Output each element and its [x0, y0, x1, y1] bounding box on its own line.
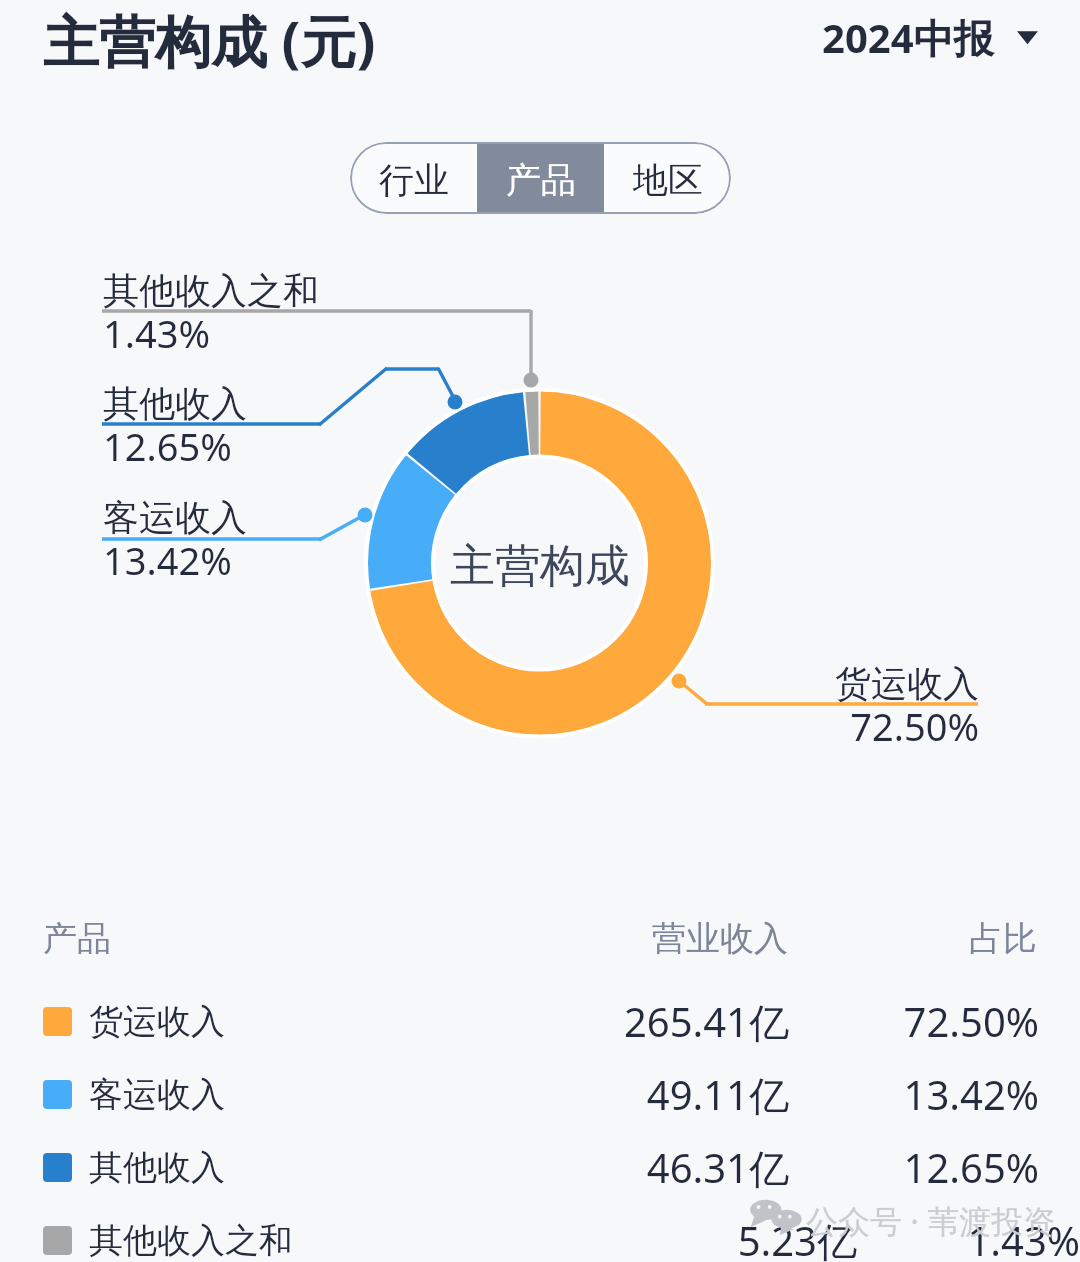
button[interactable]: 客运收入 — [0, 1061, 1080, 1127]
staticText: 49.11亿 — [500, 1067, 789, 1133]
staticText: 行业 — [379, 158, 449, 202]
button[interactable]: 其他收入 — [0, 1134, 1080, 1200]
staticText: 1.43% — [868, 1213, 1080, 1262]
staticText: 产品 — [43, 917, 111, 960]
staticText: 地区 — [633, 158, 703, 202]
staticText: 其他收入之和 — [89, 1219, 293, 1262]
staticText: 客运收入 — [89, 1073, 225, 1116]
button[interactable]: 行业 — [350, 142, 477, 214]
staticText: 13.42% — [800, 1067, 1039, 1133]
staticText: 13.42% — [103, 534, 232, 586]
staticText: 主营构成 — [450, 538, 630, 595]
staticText: 客运收入 — [103, 495, 247, 540]
button[interactable]: 地区 — [604, 142, 731, 214]
staticText: 货运收入 — [89, 1000, 225, 1043]
staticText: 其他收入之和 — [103, 268, 319, 313]
staticText: 1.43% — [103, 307, 210, 359]
staticText: 2024中报 — [822, 10, 994, 65]
staticText: 产品 — [506, 158, 576, 202]
staticText: 其他收入 — [103, 381, 247, 426]
other: Revenue composition donut chart — [0, 0, 1080, 1262]
staticText: 公众号 · 苇渡投资 — [806, 1199, 1056, 1243]
button[interactable]: 2024中报 — [816, 4, 1058, 70]
staticText: 72.50% — [600, 700, 979, 1262]
staticText: 营业收入 — [500, 917, 788, 1262]
staticText: 265.41亿 — [500, 994, 789, 1060]
staticText: 货运收入 — [600, 661, 979, 1262]
button[interactable]: 货运收入 — [0, 988, 1080, 1054]
other: WeChat — [749, 1199, 805, 1235]
staticText: 5.23亿 — [568, 1213, 857, 1262]
staticText: 其他收入 — [89, 1146, 225, 1189]
button[interactable]: 其他收入之和 — [0, 1207, 1080, 1262]
staticText: 12.65% — [800, 1140, 1039, 1206]
staticText: 主营构成 (元) — [43, 2, 376, 78]
staticText: 12.65% — [103, 420, 232, 472]
staticText: 占比 — [800, 917, 1037, 1262]
button[interactable]: 产品 — [477, 142, 604, 214]
staticText: 46.31亿 — [500, 1140, 789, 1206]
staticText: 72.50% — [800, 994, 1039, 1060]
